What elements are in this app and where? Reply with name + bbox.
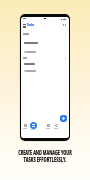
button[interactable] [60, 115, 67, 122]
staticText: TASKS EFFORTLESSLY. [17, 155, 73, 164]
button[interactable] [23, 24, 26, 27]
staticText: CREATE AND MANAGE YOUR [18, 148, 72, 157]
button[interactable] [63, 24, 66, 27]
staticText: Tasks [27, 23, 35, 27]
button[interactable] [22, 39, 69, 55]
button[interactable] [30, 122, 37, 129]
button[interactable] [22, 60, 69, 76]
button[interactable] [23, 124, 27, 129]
staticText: Tasks [27, 23, 35, 27]
button[interactable]: TASKS EFFORTLESSLY. [17, 155, 73, 164]
button[interactable]: CREATE AND MANAGE YOUR [18, 148, 72, 157]
button[interactable] [54, 124, 58, 129]
button[interactable] [46, 124, 50, 129]
